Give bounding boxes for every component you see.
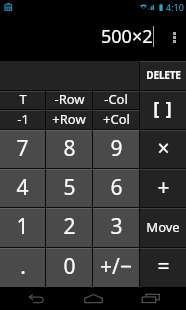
staticText: 8 (63, 134, 76, 163)
button[interactable]: DELETE (140, 61, 186, 90)
staticText: -Col (104, 90, 128, 108)
button[interactable]: -1 (0, 110, 45, 129)
button[interactable]: 8 (46, 130, 92, 168)
button[interactable]: -Col (93, 91, 139, 109)
staticText: 4 (16, 173, 29, 202)
staticText: 2 (63, 212, 76, 241)
button[interactable]: 6 (93, 169, 139, 207)
staticText: -1 (17, 110, 29, 128)
button[interactable]: 0 (46, 248, 92, 287)
staticText: × (157, 134, 170, 163)
button[interactable]: 4 (0, 169, 45, 207)
button[interactable]: 5 (46, 169, 92, 207)
staticText: 1 (16, 212, 29, 241)
staticText: 3 (110, 212, 123, 241)
staticText: DELETE (146, 68, 181, 82)
button[interactable]: [ ] (140, 91, 186, 129)
button[interactable]: -Row (46, 91, 92, 109)
button[interactable]: +/− (93, 248, 139, 287)
staticText: 9 (110, 134, 123, 163)
button[interactable]: 3 (93, 208, 139, 247)
button[interactable]: × (140, 130, 186, 168)
staticText: 0 (63, 252, 76, 281)
button[interactable]: 7 (0, 130, 45, 168)
staticText: T (19, 90, 27, 108)
staticText: 5 (63, 173, 76, 202)
button[interactable]: Home (71, 287, 115, 310)
staticText: +Col (103, 110, 130, 128)
button[interactable]: 9 (93, 130, 139, 168)
staticText: 4:10 (166, 1, 184, 13)
button[interactable]: Recents (129, 287, 173, 310)
button[interactable]: Move (140, 208, 186, 247)
staticText: Move (146, 218, 180, 236)
button[interactable]: +Col (93, 110, 139, 129)
staticText: +/− (100, 252, 132, 281)
button[interactable]: +Row (46, 110, 92, 129)
button[interactable]: T (0, 91, 45, 109)
staticText: [ ] (153, 96, 173, 121)
button[interactable]: More options (167, 14, 181, 61)
staticText: +Row (52, 110, 86, 128)
staticText: + (157, 173, 170, 202)
button[interactable]: = (140, 248, 186, 287)
button[interactable]: . (0, 248, 45, 287)
staticText: . (20, 252, 26, 281)
button[interactable]: 2 (46, 208, 92, 247)
button[interactable]: + (140, 169, 186, 207)
staticText: -Row (54, 90, 85, 108)
staticText: 500×2 (101, 24, 153, 49)
button[interactable]: 1 (0, 208, 45, 247)
staticText: 7 (16, 134, 29, 163)
button[interactable]: Back (14, 287, 58, 310)
staticText: 6 (110, 173, 123, 202)
staticText: = (157, 252, 170, 281)
